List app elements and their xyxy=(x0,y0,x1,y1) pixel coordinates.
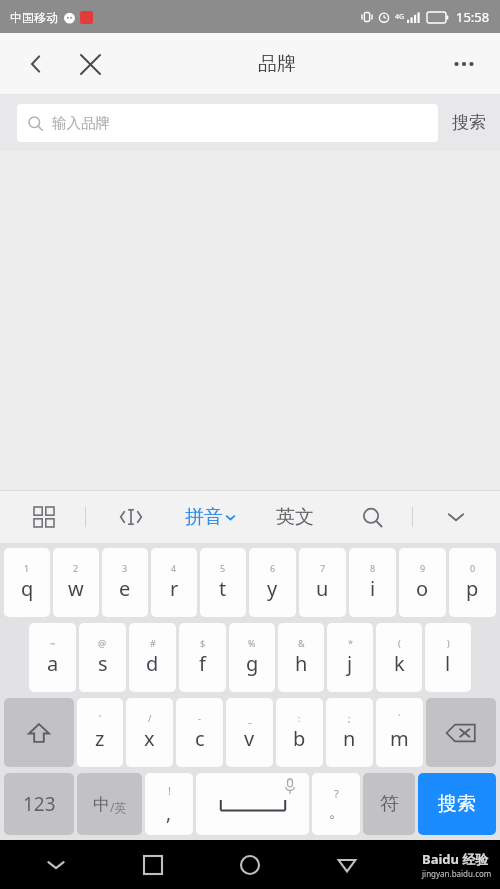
button[interactable]: 6 xyxy=(249,548,296,617)
button[interactable]: 英文 xyxy=(276,505,314,529)
button[interactable]: Home xyxy=(201,840,298,889)
staticText: 7 xyxy=(320,562,326,574)
button[interactable]: _ xyxy=(226,698,273,767)
button[interactable]: 7 xyxy=(299,548,346,617)
staticText: 0 xyxy=(470,562,476,574)
button[interactable]: / xyxy=(126,698,173,767)
button[interactable]: Recent apps xyxy=(104,840,201,889)
button[interactable]: 123 xyxy=(4,773,74,835)
staticText: o xyxy=(416,575,429,602)
button[interactable]: Shift xyxy=(4,698,74,767)
staticText: w xyxy=(68,575,84,602)
staticText: 拼音 xyxy=(185,505,223,529)
button[interactable]: 5 xyxy=(200,548,246,617)
staticText: 品牌 xyxy=(258,52,296,76)
button[interactable]: Keyboard layouts xyxy=(26,499,62,535)
staticText: b xyxy=(293,725,306,752)
staticText: / xyxy=(148,712,152,724)
button[interactable]: ~ xyxy=(29,623,76,692)
button[interactable]: Space xyxy=(196,773,309,835)
staticText: q xyxy=(21,575,34,602)
staticText: 3 xyxy=(122,562,128,574)
button[interactable]: 符 xyxy=(363,773,415,835)
staticText: 中 xyxy=(93,794,110,815)
button[interactable]: 9 xyxy=(399,548,446,617)
button[interactable]: 0 xyxy=(449,548,496,617)
staticText: ( xyxy=(398,637,401,649)
staticText: d xyxy=(146,650,159,677)
button[interactable]: ? xyxy=(312,773,360,835)
staticText: l xyxy=(445,650,451,677)
button[interactable]: ! xyxy=(145,773,193,835)
staticText: jingyan.baidu.com xyxy=(422,868,492,879)
staticText: - xyxy=(198,712,201,724)
button[interactable]: 搜索 xyxy=(418,773,496,835)
button[interactable]: * xyxy=(327,623,373,692)
staticText: @ xyxy=(98,637,107,649)
staticText: Baidu 经验 xyxy=(422,850,489,868)
staticText: c xyxy=(195,725,205,752)
button[interactable]: 4 xyxy=(151,548,197,617)
button[interactable]: : xyxy=(276,698,323,767)
button[interactable]: % xyxy=(229,623,275,692)
staticText: & xyxy=(298,637,305,649)
button[interactable]: Close xyxy=(70,44,110,84)
button[interactable]: & xyxy=(278,623,324,692)
button[interactable]: 2 xyxy=(53,548,99,617)
staticText: y xyxy=(267,575,278,602)
staticText: 中国移动 xyxy=(10,10,58,25)
staticText: 8 xyxy=(370,562,376,574)
staticText: 英文 xyxy=(276,505,314,529)
button[interactable]: 1 xyxy=(4,548,50,617)
button[interactable]: Hide keyboard xyxy=(8,840,104,889)
button[interactable]: ` xyxy=(376,698,423,767)
button[interactable]: 8 xyxy=(349,548,396,617)
staticText: 搜索 xyxy=(452,112,486,133)
staticText: 符 xyxy=(380,792,399,816)
button[interactable]: More options xyxy=(444,44,484,84)
staticText: e xyxy=(119,575,131,602)
button[interactable]: Backspace xyxy=(426,698,496,767)
button[interactable]: # xyxy=(129,623,176,692)
staticText: k xyxy=(394,650,405,677)
staticText: u xyxy=(316,575,329,602)
staticText: j xyxy=(347,650,353,677)
staticText: _ xyxy=(248,712,252,724)
button[interactable]: Hide keyboard xyxy=(438,499,474,535)
staticText: 输入品牌 xyxy=(52,114,110,132)
button[interactable]: - xyxy=(176,698,223,767)
button[interactable]: ) xyxy=(425,623,471,692)
staticText: ` xyxy=(398,712,401,724)
button[interactable]: 3 xyxy=(102,548,148,617)
button[interactable]: 拼音 xyxy=(185,505,236,529)
staticText: $ xyxy=(200,637,206,649)
staticText: 。 xyxy=(329,803,344,822)
staticText: x xyxy=(144,725,155,752)
staticText: f xyxy=(199,650,206,677)
button[interactable]: ( xyxy=(376,623,422,692)
staticText: h xyxy=(295,650,308,677)
button[interactable]: Back xyxy=(16,44,56,84)
staticText: 搜索 xyxy=(438,792,476,816)
staticText: v xyxy=(244,725,255,752)
button[interactable]: ; xyxy=(326,698,373,767)
button[interactable]: Back xyxy=(298,840,395,889)
button[interactable]: Search xyxy=(354,499,390,535)
staticText: # xyxy=(150,637,156,649)
staticText: a xyxy=(47,650,59,677)
button[interactable]: Cursor move xyxy=(113,499,149,535)
staticText: 4 xyxy=(171,562,177,574)
staticText: ' xyxy=(99,712,102,724)
button[interactable]: 搜索 xyxy=(452,112,486,133)
button[interactable]: 输入品牌 xyxy=(17,104,438,142)
staticText: z xyxy=(95,725,105,752)
button[interactable]: @ xyxy=(79,623,126,692)
button[interactable]: $ xyxy=(179,623,226,692)
staticText: n xyxy=(343,725,356,752)
staticText: % xyxy=(248,637,256,649)
button[interactable]: ' xyxy=(77,698,123,767)
staticText: g xyxy=(246,650,259,677)
staticText: 5 xyxy=(220,562,226,574)
button[interactable]: 中 xyxy=(77,773,142,835)
staticText: p xyxy=(466,575,479,602)
